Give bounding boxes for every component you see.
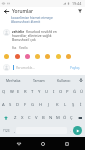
- button[interactable]: Home: [37, 138, 48, 149]
- button[interactable]: D: [14, 98, 21, 111]
- staticText: Q: [2, 89, 6, 95]
- button[interactable]: Back: [0, 7, 12, 15]
- staticText: R: [24, 89, 27, 95]
- staticText: Yanıtla: [19, 46, 28, 50]
- staticText: Ğ: [73, 89, 77, 95]
- staticText: K: [56, 102, 59, 108]
- button[interactable]: T: [29, 85, 36, 98]
- button[interactable]: İ: [77, 98, 85, 111]
- button[interactable]: G: [29, 98, 37, 111]
- button[interactable]: I: [50, 85, 57, 98]
- staticText: B: [42, 115, 45, 121]
- button[interactable]: Ö: [61, 111, 68, 124]
- staticText: 19:44: [72, 1, 82, 6]
- button[interactable]: W: [8, 85, 15, 98]
- staticText: ?123: [3, 129, 10, 133]
- button[interactable]: S: [7, 98, 14, 111]
- button[interactable]: Q: [0, 85, 8, 98]
- button[interactable]: Emoji: [65, 53, 72, 60]
- button[interactable]: P: [64, 85, 71, 98]
- button[interactable]: H: [37, 98, 45, 111]
- button[interactable]: Paylaş: [68, 64, 82, 72]
- staticText: G: [31, 102, 35, 108]
- staticText: .: [70, 128, 71, 133]
- button[interactable]: V: [33, 111, 40, 124]
- staticText: C: [28, 115, 31, 121]
- staticText: zehirlie: [12, 29, 25, 33]
- staticText: 8sa: [12, 46, 17, 50]
- staticText: M: [56, 115, 60, 121]
- staticText: Kullanıcı: [57, 78, 71, 83]
- button[interactable]: Ç: [68, 111, 75, 124]
- button[interactable]: Emoji: [44, 53, 51, 60]
- staticText: Ç: [70, 115, 73, 121]
- staticText: Yorumlar: [12, 8, 34, 15]
- staticText: I: [53, 89, 55, 95]
- staticText: N: [49, 115, 53, 121]
- button[interactable]: X: [19, 111, 26, 124]
- button[interactable]: Merhaba: [0, 75, 26, 85]
- button[interactable]: Emoji: [24, 53, 31, 60]
- button[interactable]: K: [53, 98, 61, 111]
- button[interactable]: Tamam: [26, 75, 51, 85]
- button[interactable]: A: [0, 98, 7, 111]
- staticText: A: [2, 102, 5, 108]
- staticText: Ü: [80, 89, 84, 95]
- button[interactable]: Emoji: [14, 53, 21, 60]
- button[interactable]: Ğ: [71, 85, 78, 98]
- staticText: hazırdılar, ellerinize sağlık: [12, 33, 52, 37]
- button[interactable]: N: [47, 111, 54, 124]
- button[interactable]: E: [15, 85, 22, 98]
- staticText: T: [31, 89, 34, 95]
- button[interactable]: L: [61, 98, 69, 111]
- staticText: H: [39, 102, 43, 108]
- button[interactable]: Yanıtla: [19, 46, 28, 50]
- button[interactable]: F: [21, 98, 29, 111]
- staticText: Y: [38, 89, 41, 95]
- staticText: Z: [14, 115, 17, 121]
- button[interactable]: ,: [12, 124, 16, 137]
- button[interactable]: R: [22, 85, 29, 98]
- button[interactable]: U: [43, 85, 50, 98]
- button[interactable]: Ü: [78, 85, 85, 98]
- staticText: L: [64, 102, 67, 108]
- button[interactable]: Backspace: [75, 111, 85, 124]
- button[interactable]: Y: [36, 85, 43, 98]
- button[interactable]: Ş: [69, 98, 77, 111]
- button[interactable]: ?123: [0, 124, 12, 137]
- button[interactable]: Send: [73, 126, 82, 135]
- staticText: Bonushost! çok: [12, 37, 36, 41]
- staticText: Merhaba: [6, 78, 21, 83]
- staticText: P: [66, 89, 69, 95]
- button[interactable]: C: [26, 111, 33, 124]
- button[interactable]: Recents: [61, 138, 72, 149]
- button[interactable]: M: [54, 111, 61, 124]
- button[interactable]: Emoji: [34, 53, 41, 60]
- staticText: E: [17, 89, 20, 95]
- button[interactable]: Back: [13, 138, 24, 149]
- button[interactable]: J: [45, 98, 53, 111]
- button[interactable]: Kullanıcı: [51, 75, 76, 85]
- staticText: J: [48, 102, 50, 108]
- staticText: kocaelimize hizmet etmeye: [11, 15, 53, 19]
- staticText: S: [9, 102, 12, 108]
- staticText: Tamam: [33, 78, 45, 83]
- staticText: V: [35, 115, 38, 121]
- staticText: W: [10, 89, 14, 95]
- button[interactable]: Emoji: [3, 53, 10, 60]
- button[interactable]: Shift: [0, 111, 11, 124]
- button[interactable]: Filter: [75, 7, 85, 15]
- button[interactable]: Z: [11, 111, 19, 124]
- button[interactable]: O: [57, 85, 64, 98]
- staticText: F: [24, 102, 27, 108]
- staticText: fknurkod ncvikfd en: [26, 29, 57, 33]
- button[interactable]: Voice input: [76, 75, 85, 85]
- staticText: #bonushost #izmit: [11, 19, 41, 23]
- staticText: İ: [80, 102, 82, 108]
- button[interactable]: B: [40, 111, 47, 124]
- button[interactable]: Emoji: [55, 53, 62, 60]
- staticText: Yorum ekle…: [16, 66, 35, 70]
- staticText: ,: [14, 128, 15, 133]
